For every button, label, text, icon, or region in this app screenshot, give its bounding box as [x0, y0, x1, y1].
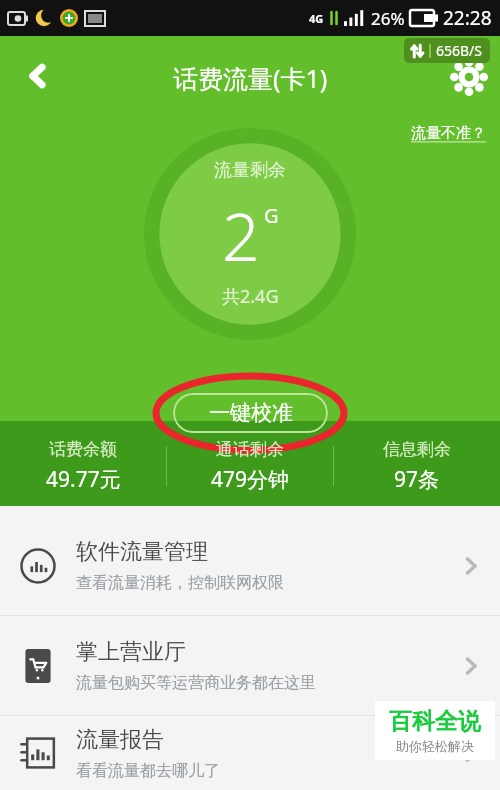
button[interactable]: 掌上营业厅: [0, 616, 500, 715]
button[interactable]: Back: [14, 52, 62, 100]
staticText: 掌上营业厅: [76, 638, 186, 666]
staticText: 流量剩余: [214, 159, 286, 182]
staticText: 22:28: [443, 5, 492, 31]
staticText: 流量报告: [76, 726, 164, 754]
button[interactable]: 656B/S: [409, 41, 485, 60]
staticText: 4G: [309, 11, 324, 26]
staticText: 656B/S: [436, 41, 483, 60]
staticText: 看看流量都去哪儿了: [76, 761, 220, 781]
staticText: 一键校准: [209, 400, 293, 426]
staticText: 助你轻松解决: [396, 738, 474, 754]
button[interactable]: 流量不准？: [407, 120, 490, 147]
staticText: 26%: [371, 7, 405, 30]
staticText: 共2.4G: [222, 284, 279, 309]
staticText: 软件流量管理: [76, 538, 208, 566]
button[interactable]: Settings: [446, 54, 492, 100]
staticText: 百科全说: [389, 707, 481, 736]
staticText: 查看流量消耗，控制联网权限: [76, 573, 284, 593]
staticText: G: [264, 202, 279, 229]
staticText: 479分钟: [211, 465, 290, 494]
button[interactable]: 信息剩余: [334, 426, 500, 506]
button[interactable]: 一键校准: [173, 393, 328, 433]
staticText: 话费流量(卡1): [173, 61, 328, 95]
button[interactable]: 软件流量管理: [0, 516, 500, 615]
staticText: 话费余额: [49, 439, 117, 460]
button[interactable]: 通话剩余: [167, 426, 333, 506]
staticText: 流量不准？: [411, 124, 486, 143]
staticText: 97条: [394, 465, 440, 494]
staticText: 流量包购买等运营商业务都在这里: [76, 673, 316, 693]
staticText: 2: [222, 190, 260, 280]
button[interactable]: 话费余额: [0, 426, 166, 506]
staticText: 信息剩余: [383, 439, 451, 460]
button[interactable]: 流量报告: [0, 716, 500, 790]
staticText: 通话剩余: [216, 439, 284, 460]
staticText: 49.77元: [46, 465, 121, 494]
